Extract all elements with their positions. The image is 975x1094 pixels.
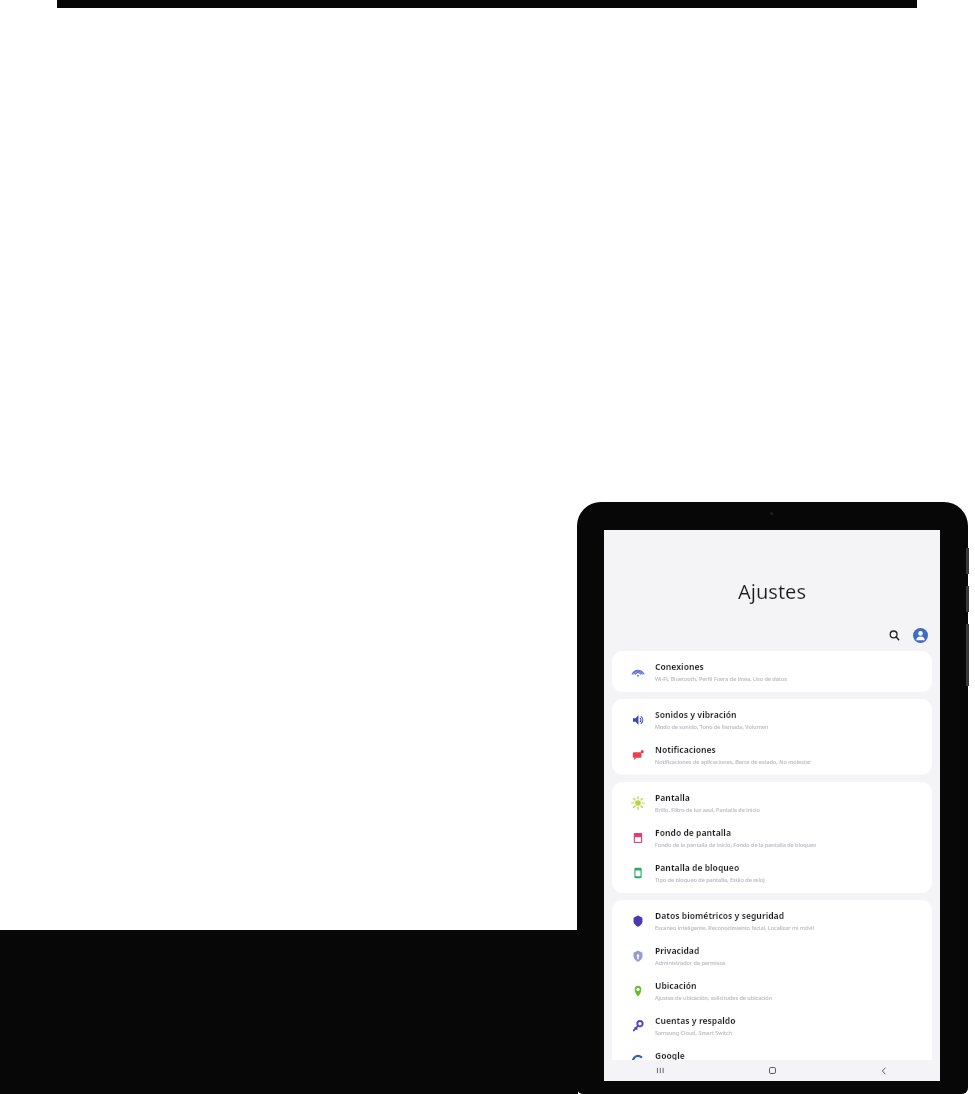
- staticText: Fondo de la pantalla de inicio, Fondo de…: [655, 841, 817, 848]
- button[interactable]: Conexiones: [612, 654, 932, 689]
- staticText: Samsung Cloud, Smart Switch: [655, 1029, 733, 1036]
- button[interactable]: Google: [612, 1043, 932, 1060]
- button[interactable]: Search: [884, 625, 904, 645]
- button[interactable]: Profile: [910, 625, 930, 645]
- button[interactable]: Pantalla: [612, 785, 932, 820]
- button[interactable]: Pantalla de bloqueo: [612, 855, 932, 890]
- staticText: Administrador de permisos: [655, 959, 726, 966]
- button[interactable]: Recents: [604, 1060, 716, 1081]
- staticText: Modo de sonido, Tono de llamada, Volumen: [655, 723, 769, 730]
- button[interactable]: Cuentas y respaldo: [612, 1008, 932, 1043]
- staticText: Brillo, Filtro de luz azul, Pantalla de …: [655, 806, 760, 813]
- staticText: Pantalla de bloqueo: [655, 862, 740, 874]
- staticText: Ajustes de ubicación, solicitudes de ubi…: [655, 994, 773, 1001]
- button[interactable]: Fondo de pantalla: [612, 820, 932, 855]
- staticText: Pantalla: [655, 792, 690, 804]
- button[interactable]: Sonidos y vibración: [612, 702, 932, 737]
- staticText: Ubicación: [655, 980, 697, 992]
- staticText: Tipo de bloqueo de pantalla, Estilo de r…: [655, 876, 765, 883]
- staticText: Ajustes: [604, 578, 940, 605]
- button[interactable]: Datos biométricos y seguridad: [612, 903, 932, 938]
- staticText: Escaneo inteligente, Reconocimiento faci…: [655, 924, 814, 931]
- staticText: Datos biométricos y seguridad: [655, 910, 785, 922]
- staticText: Google: [655, 1050, 685, 1060]
- staticText: Fondo de pantalla: [655, 827, 731, 839]
- staticText: Notificaciones de aplicaciones, Barra de…: [655, 758, 812, 765]
- staticText: Conexiones: [655, 661, 704, 673]
- staticText: Notificaciones: [655, 744, 716, 756]
- button[interactable]: Privacidad: [612, 938, 932, 973]
- staticText: Sonidos y vibración: [655, 709, 737, 721]
- staticText: Wi-Fi, Bluetooth, Perfil Fuera de línea,…: [655, 675, 787, 682]
- button[interactable]: Notificaciones: [612, 737, 932, 772]
- staticText: Cuentas y respaldo: [655, 1015, 736, 1027]
- button[interactable]: Home: [716, 1060, 828, 1081]
- button[interactable]: Ubicación: [612, 973, 932, 1008]
- staticText: Privacidad: [655, 945, 700, 957]
- button[interactable]: Back: [828, 1060, 940, 1081]
